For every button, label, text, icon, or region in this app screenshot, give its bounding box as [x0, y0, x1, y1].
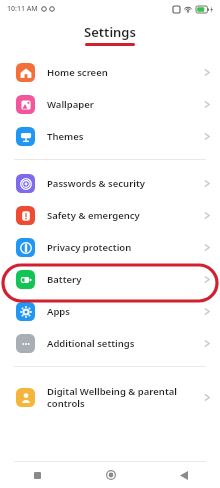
button[interactable]: Home [74, 462, 147, 488]
button[interactable]: Back [147, 462, 220, 488]
button[interactable]: Safety & emergency [0, 199, 220, 231]
staticText: Themes [47, 130, 198, 143]
button[interactable]: Additional settings [0, 327, 220, 359]
staticText: Settings [84, 23, 136, 41]
staticText: Apps [47, 305, 198, 318]
staticText: Wallpaper [47, 98, 198, 111]
button[interactable]: Recent apps [0, 462, 74, 488]
button[interactable]: Home screen [0, 56, 220, 88]
button[interactable]: Digital Wellbeing & parental controls [0, 374, 220, 420]
staticText: Home screen [47, 66, 198, 79]
staticText: Battery [47, 273, 198, 286]
button[interactable]: Wallpaper [0, 88, 220, 120]
button[interactable]: Themes [0, 120, 220, 152]
button[interactable]: Passwords & security [0, 167, 220, 199]
button[interactable]: Privacy protection [0, 231, 220, 263]
staticText: Digital Wellbeing & parental controls [47, 385, 198, 410]
staticText: 10:11 AM [7, 4, 38, 14]
staticText: Privacy protection [47, 241, 198, 254]
button[interactable]: Apps [0, 295, 220, 327]
staticText: Safety & emergency [47, 209, 198, 222]
staticText: Additional settings [47, 337, 198, 350]
button[interactable]: Battery [0, 263, 220, 295]
staticText: Passwords & security [47, 177, 198, 190]
